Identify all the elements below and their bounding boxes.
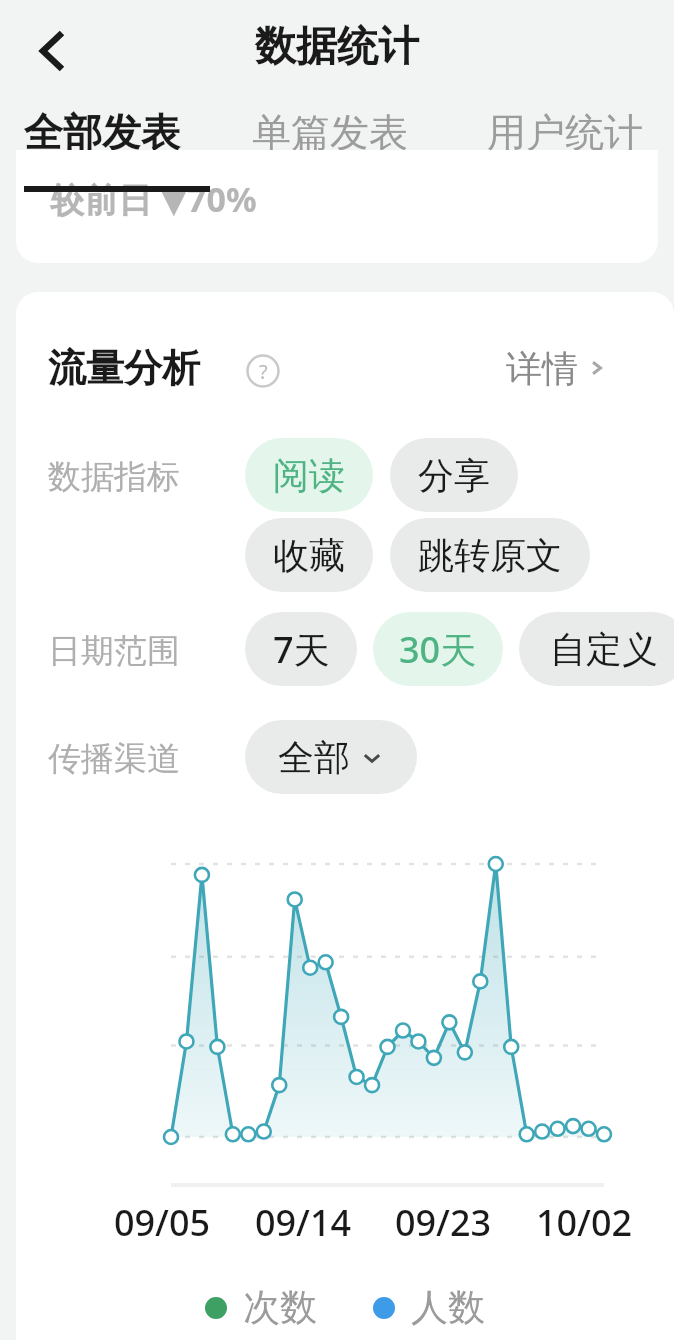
- staticText: 数据指标: [48, 456, 180, 498]
- staticText: 全部: [278, 735, 350, 780]
- staticText: 跳转原文: [418, 533, 562, 578]
- staticText: 09/23: [383, 1198, 503, 1247]
- button[interactable]: 全部: [245, 720, 417, 794]
- button[interactable]: 30天: [373, 612, 503, 686]
- button[interactable]: 次数: [205, 1284, 317, 1331]
- staticText: 自定义: [550, 627, 658, 672]
- staticText: 全部发表: [24, 108, 180, 157]
- button[interactable]: 人数: [373, 1284, 485, 1331]
- staticText: 10/02: [524, 1198, 644, 1247]
- staticText: 分享: [418, 453, 490, 498]
- staticText: 传播渠道: [48, 738, 180, 780]
- staticText: 次数: [243, 1284, 317, 1331]
- staticText: 详情: [506, 346, 578, 391]
- staticText: 日期范围: [48, 630, 180, 672]
- staticText: 阅读: [273, 453, 345, 498]
- staticText: 用户统计: [487, 108, 643, 157]
- button[interactable]: 阅读: [245, 438, 373, 512]
- button[interactable]: 跳转原文: [390, 518, 590, 592]
- staticText: 单篇发表: [252, 108, 408, 157]
- staticText: 30天: [399, 625, 477, 674]
- staticText: 09/14: [243, 1198, 363, 1247]
- button[interactable]: 自定义: [519, 612, 674, 686]
- button[interactable]: 详情: [506, 340, 608, 396]
- button[interactable]: 用户统计: [487, 108, 643, 193]
- button[interactable]: 分享: [390, 438, 518, 512]
- button[interactable]: 单篇发表: [252, 108, 408, 193]
- staticText: 数据统计: [255, 21, 419, 73]
- staticText: 较前日 ▼70%: [50, 176, 257, 222]
- button[interactable]: 7天: [245, 612, 357, 686]
- staticText: 流量分析: [48, 344, 200, 392]
- staticText: 09/05: [102, 1198, 222, 1247]
- staticText: 人数: [411, 1284, 485, 1331]
- button[interactable]: 收藏: [245, 518, 373, 592]
- staticText: 收藏: [273, 533, 345, 578]
- button[interactable]: Back: [18, 23, 82, 87]
- button[interactable]: Help: [246, 354, 280, 388]
- staticText: ?: [259, 358, 268, 385]
- staticText: 7天: [273, 625, 330, 674]
- button[interactable]: 全部发表: [24, 108, 210, 193]
